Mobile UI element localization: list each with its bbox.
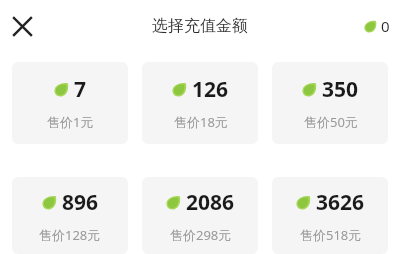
- staticText: 7: [74, 75, 87, 104]
- staticText: 售价298元: [170, 226, 232, 244]
- button[interactable]: 7: [12, 62, 128, 144]
- staticText: 0: [381, 16, 390, 36]
- button[interactable]: 3626: [272, 177, 388, 254]
- staticText: 售价1元: [47, 113, 94, 131]
- staticText: 售价128元: [39, 226, 101, 244]
- button[interactable]: Close: [4, 8, 40, 44]
- staticText: 350: [322, 75, 359, 104]
- staticText: 2086: [186, 188, 235, 217]
- button[interactable]: 896: [12, 177, 128, 254]
- staticText: 3626: [316, 188, 365, 217]
- button[interactable]: 350: [272, 62, 388, 144]
- staticText: 896: [62, 188, 99, 217]
- staticText: 售价50元: [304, 113, 358, 131]
- staticText: 126: [192, 75, 229, 104]
- button[interactable]: 126: [142, 62, 258, 144]
- button[interactable]: 0: [364, 16, 390, 36]
- staticText: 选择充值金额: [152, 16, 248, 36]
- button[interactable]: 2086: [142, 177, 258, 254]
- staticText: 售价18元: [174, 113, 228, 131]
- staticText: 售价518元: [300, 226, 362, 244]
